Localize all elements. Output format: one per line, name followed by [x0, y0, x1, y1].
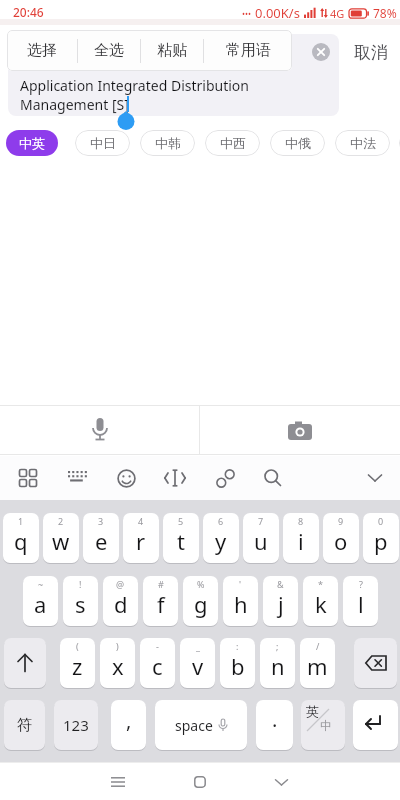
- staticText: w: [52, 526, 70, 556]
- button[interactable]: 5: [163, 513, 199, 563]
- staticText: Management [S]: [20, 95, 129, 114]
- button[interactable]: [108, 460, 144, 496]
- staticText: @: [116, 578, 125, 590]
- staticText: 符: [17, 716, 32, 735]
- button[interactable]: 符: [4, 700, 45, 750]
- button[interactable]: [357, 460, 393, 496]
- button[interactable]: ~: [23, 576, 58, 626]
- button[interactable]: 7: [243, 513, 279, 563]
- staticText: 中韩: [155, 135, 181, 151]
- staticText: o: [334, 526, 348, 556]
- button[interactable]: &: [263, 576, 298, 626]
- button[interactable]: 中德: [399, 130, 400, 156]
- staticText: !: [79, 578, 82, 590]
- button[interactable]: 英: [301, 700, 345, 750]
- button[interactable]: :: [220, 638, 255, 688]
- button[interactable]: 取消: [348, 39, 394, 66]
- button[interactable]: [8, 34, 339, 116]
- staticText: 选择: [27, 41, 57, 60]
- staticText: k: [315, 589, 327, 619]
- staticText: f: [157, 589, 165, 619]
- staticText: ': [239, 578, 242, 590]
- staticText: •••: [242, 8, 252, 19]
- button[interactable]: [4, 638, 46, 688]
- staticText: p: [374, 526, 388, 556]
- staticText: 中法: [350, 135, 376, 151]
- button[interactable]: 0: [363, 513, 399, 563]
- button[interactable]: (: [60, 638, 95, 688]
- button[interactable]: ?: [343, 576, 378, 626]
- button[interactable]: [157, 460, 193, 496]
- button[interactable]: !: [63, 576, 98, 626]
- button[interactable]: 选择: [7, 30, 77, 71]
- button[interactable]: 8: [283, 513, 319, 563]
- button[interactable]: _: [180, 638, 215, 688]
- staticText: 中英: [19, 135, 45, 151]
- button[interactable]: [182, 764, 218, 800]
- button[interactable]: 全选: [78, 30, 140, 71]
- staticText: c: [152, 651, 163, 681]
- staticText: 7: [258, 515, 264, 527]
- button[interactable]: .: [256, 700, 293, 750]
- staticText: ,: [126, 707, 132, 734]
- staticText: d: [114, 589, 128, 619]
- button[interactable]: @: [103, 576, 138, 626]
- button[interactable]: [255, 460, 291, 496]
- button[interactable]: 中日: [75, 130, 130, 156]
- button[interactable]: ;: [260, 638, 295, 688]
- staticText: 中俄: [285, 135, 311, 151]
- button[interactable]: [100, 764, 136, 800]
- staticText: 6: [218, 515, 224, 527]
- button[interactable]: 中法: [335, 130, 390, 156]
- staticText: ): [116, 640, 119, 652]
- staticText: 4: [138, 515, 144, 527]
- staticText: /: [316, 640, 320, 652]
- button[interactable]: /: [300, 638, 335, 688]
- button[interactable]: [10, 460, 46, 496]
- staticText: r: [136, 526, 146, 556]
- button[interactable]: %: [183, 576, 218, 626]
- button[interactable]: 中俄: [270, 130, 325, 156]
- button[interactable]: ,: [111, 700, 146, 750]
- button[interactable]: 1: [3, 513, 39, 563]
- staticText: #: [158, 578, 164, 590]
- button[interactable]: #: [143, 576, 178, 626]
- staticText: space: [175, 716, 213, 735]
- staticText: 1: [18, 515, 24, 527]
- button[interactable]: -: [140, 638, 175, 688]
- staticText: z: [72, 651, 83, 681]
- button[interactable]: [353, 700, 398, 750]
- button[interactable]: 9: [323, 513, 359, 563]
- staticText: .: [272, 706, 278, 733]
- staticText: x: [112, 651, 124, 681]
- staticText: 0.00K/s: [255, 4, 300, 22]
- staticText: t: [177, 526, 185, 556]
- button[interactable]: [312, 43, 330, 61]
- staticText: b: [231, 651, 245, 681]
- button[interactable]: space: [155, 700, 247, 750]
- staticText: g: [194, 589, 208, 619]
- button[interactable]: 2: [43, 513, 79, 563]
- button[interactable]: [59, 460, 95, 496]
- button[interactable]: 常用语: [204, 30, 292, 71]
- button[interactable]: 123: [54, 700, 98, 750]
- staticText: ;: [276, 640, 279, 652]
- button[interactable]: [200, 405, 400, 455]
- button[interactable]: 中英: [6, 130, 58, 156]
- button[interactable]: 中西: [205, 130, 260, 156]
- button[interactable]: 3: [83, 513, 119, 563]
- button[interactable]: *: [303, 576, 338, 626]
- staticText: 3: [98, 515, 104, 527]
- button[interactable]: [263, 764, 299, 800]
- button[interactable]: [0, 405, 200, 455]
- button[interactable]: ): [100, 638, 135, 688]
- button[interactable]: 中韩: [140, 130, 195, 156]
- button[interactable]: [207, 460, 243, 496]
- button[interactable]: 粘贴: [141, 30, 203, 71]
- button[interactable]: 6: [203, 513, 239, 563]
- staticText: 9: [338, 515, 344, 527]
- button[interactable]: [354, 638, 397, 688]
- button[interactable]: ': [223, 576, 258, 626]
- staticText: n: [271, 651, 285, 681]
- button[interactable]: 4: [123, 513, 159, 563]
